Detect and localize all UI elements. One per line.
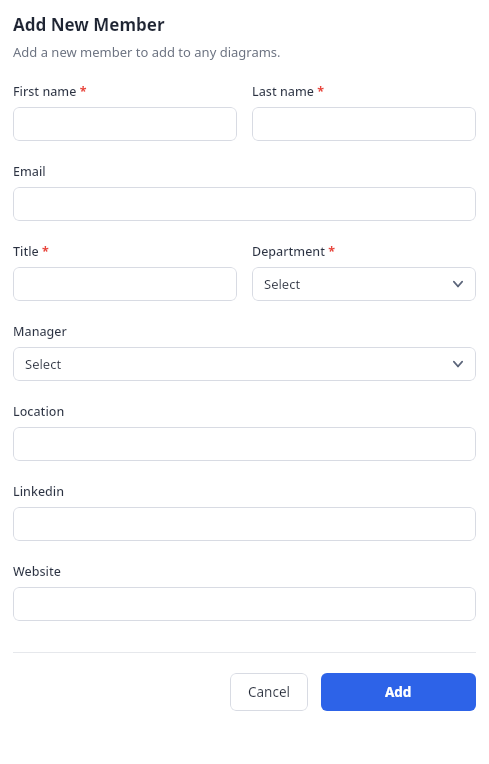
- staticText: Cancel: [248, 683, 291, 701]
- button[interactable]: Select: [252, 267, 476, 301]
- button[interactable]: [13, 107, 237, 141]
- staticText: Last name *: [252, 83, 324, 100]
- button[interactable]: Add: [321, 673, 476, 711]
- staticText: Department *: [252, 243, 335, 260]
- staticText: Title *: [13, 243, 49, 260]
- staticText: Manager: [13, 323, 67, 340]
- staticText: Linkedin: [13, 483, 65, 500]
- staticText: Select: [264, 275, 301, 293]
- button[interactable]: Cancel: [230, 673, 308, 711]
- button[interactable]: [13, 427, 476, 461]
- staticText: Website: [13, 563, 61, 580]
- staticText: Add: [385, 683, 412, 701]
- button[interactable]: [252, 107, 476, 141]
- button[interactable]: Select: [13, 347, 476, 381]
- staticText: Location: [13, 403, 65, 420]
- staticText: Add New Member: [13, 13, 165, 36]
- staticText: Add a new member to add to any diagrams.: [13, 43, 281, 61]
- staticText: Select: [25, 355, 62, 373]
- button[interactable]: [13, 507, 476, 541]
- button[interactable]: [13, 187, 476, 221]
- button[interactable]: [13, 267, 237, 301]
- button[interactable]: [13, 587, 476, 621]
- staticText: Email: [13, 163, 46, 180]
- staticText: First name *: [13, 83, 87, 100]
